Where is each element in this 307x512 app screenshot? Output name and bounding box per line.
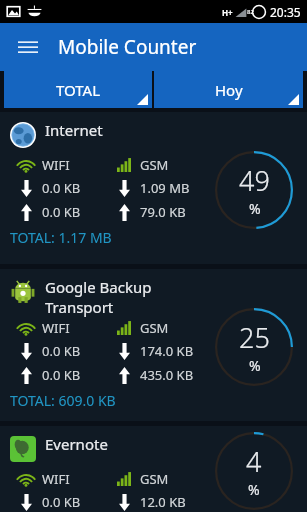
button[interactable]: Internet	[0, 112, 307, 264]
staticText: WIFI	[42, 319, 70, 337]
button[interactable]: Google Backup	[0, 269, 307, 421]
staticText: GSM	[140, 319, 169, 337]
staticText: Internet	[45, 120, 103, 140]
button[interactable]: Evernote	[0, 426, 307, 512]
staticText: 49	[239, 162, 270, 199]
button[interactable]: Open navigation menu	[10, 29, 46, 65]
staticText: Google Backup	[45, 277, 152, 297]
staticText: 79.0 KB	[140, 203, 186, 221]
staticText: 12.0 KB	[140, 493, 186, 511]
staticText: %	[249, 356, 261, 375]
staticText: 435.0 KB	[140, 366, 194, 384]
staticText: 4	[246, 443, 262, 480]
staticText: 0.0 KB	[42, 366, 81, 384]
staticText: 0.0 KB	[42, 179, 81, 197]
staticText: 174.0 KB	[140, 342, 194, 360]
staticText: H+	[222, 7, 233, 18]
staticText: WIFI	[42, 156, 70, 174]
staticText: WIFI	[42, 470, 70, 488]
staticText: Evernote	[45, 434, 108, 454]
staticText: GSM	[140, 156, 169, 174]
staticText: GSM	[140, 470, 169, 488]
staticText: 1.09 MB	[140, 179, 190, 197]
staticText: %	[249, 199, 261, 218]
button[interactable]: TOTAL	[4, 71, 152, 108]
staticText: TOTAL	[56, 80, 101, 100]
staticText: TOTAL: 609.0 KB	[10, 391, 116, 410]
staticText: Hoy	[215, 80, 243, 100]
staticText: 25	[239, 319, 270, 356]
staticText: 0.0 KB	[42, 493, 81, 511]
staticText: %	[248, 480, 260, 499]
staticText: 0.0 KB	[42, 342, 81, 360]
staticText: TOTAL: 1.17 MB	[10, 228, 112, 247]
staticText: 20:35	[270, 4, 301, 20]
staticText: Mobile Counter	[58, 34, 197, 60]
button[interactable]: Hoy	[154, 71, 303, 108]
staticText: 0.0 KB	[42, 203, 81, 221]
staticText: Transport	[45, 297, 114, 317]
staticText: 82	[246, 8, 255, 16]
